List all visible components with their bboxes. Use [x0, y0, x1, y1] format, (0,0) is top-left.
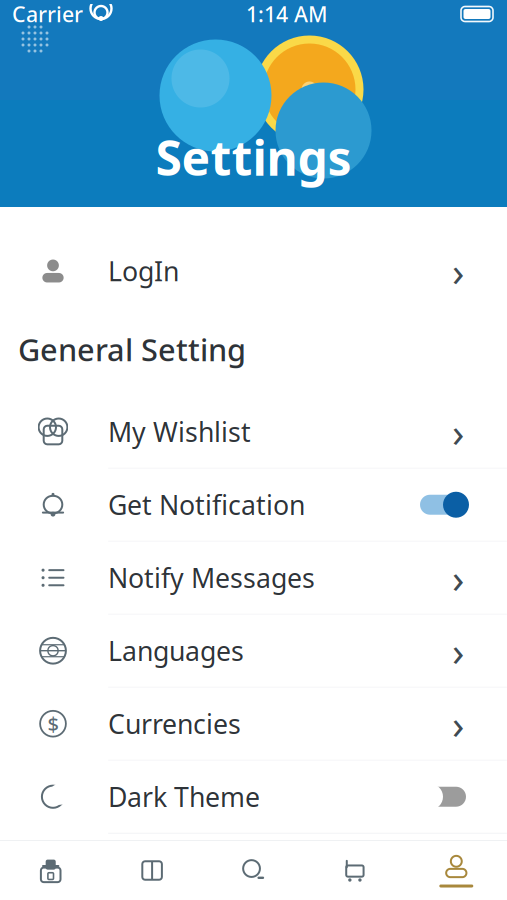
staticText: Notify Messages [108, 560, 315, 595]
staticText: Currencies [108, 706, 241, 741]
staticText: › [452, 405, 464, 458]
staticText: LogIn [108, 253, 179, 289]
button[interactable]: Languages [0, 615, 507, 688]
staticText: 1:14 AM [246, 0, 328, 28]
staticText: General Setting [18, 329, 246, 370]
button[interactable]: Dark Theme [0, 761, 507, 834]
button[interactable]: My Wishlist [0, 396, 507, 469]
button[interactable]: $ [0, 688, 507, 761]
button[interactable]: LogIn [0, 207, 507, 307]
button[interactable]: Cart [304, 841, 406, 900]
staticText: › [452, 624, 464, 677]
staticText: Carrier [12, 0, 83, 28]
button[interactable]: Get Notification [0, 469, 507, 542]
button[interactable]: Catalog [101, 841, 203, 900]
button[interactable]: Home [0, 841, 101, 900]
button[interactable]: Search [203, 841, 304, 900]
staticText: $ [47, 710, 58, 737]
staticText: › [452, 244, 464, 297]
button[interactable]: Menu [13, 17, 57, 61]
staticText: Settings [155, 125, 351, 189]
staticText: My Wishlist [108, 414, 251, 449]
staticText: Dark Theme [108, 779, 260, 814]
staticText: Get Notification [108, 487, 305, 522]
button[interactable]: Notify Messages [0, 542, 507, 615]
button[interactable]: Account [406, 841, 507, 900]
staticText: › [452, 697, 464, 750]
staticText: › [452, 551, 464, 604]
staticText: Languages [108, 633, 244, 668]
